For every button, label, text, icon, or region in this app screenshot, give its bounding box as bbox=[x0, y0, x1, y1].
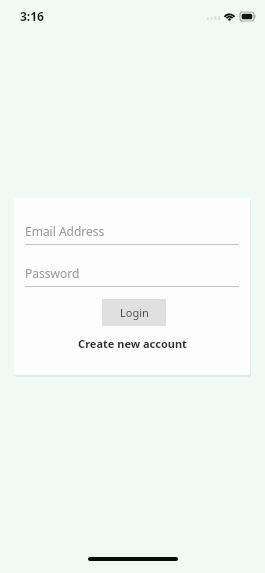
other: Wi-Fi bbox=[223, 11, 236, 21]
staticText: Password bbox=[25, 265, 80, 281]
button[interactable]: Create new account bbox=[25, 336, 239, 351]
staticText: Email Address bbox=[25, 223, 105, 239]
button[interactable]: Email Address bbox=[25, 220, 239, 245]
staticText: Login bbox=[120, 305, 149, 320]
other: Cellular signal bbox=[207, 13, 220, 20]
other: Battery bbox=[240, 12, 256, 21]
button[interactable]: Login bbox=[102, 299, 166, 326]
button[interactable]: Password bbox=[25, 262, 239, 287]
staticText: 3:16 bbox=[20, 8, 44, 24]
staticText: Create new account bbox=[78, 336, 187, 351]
